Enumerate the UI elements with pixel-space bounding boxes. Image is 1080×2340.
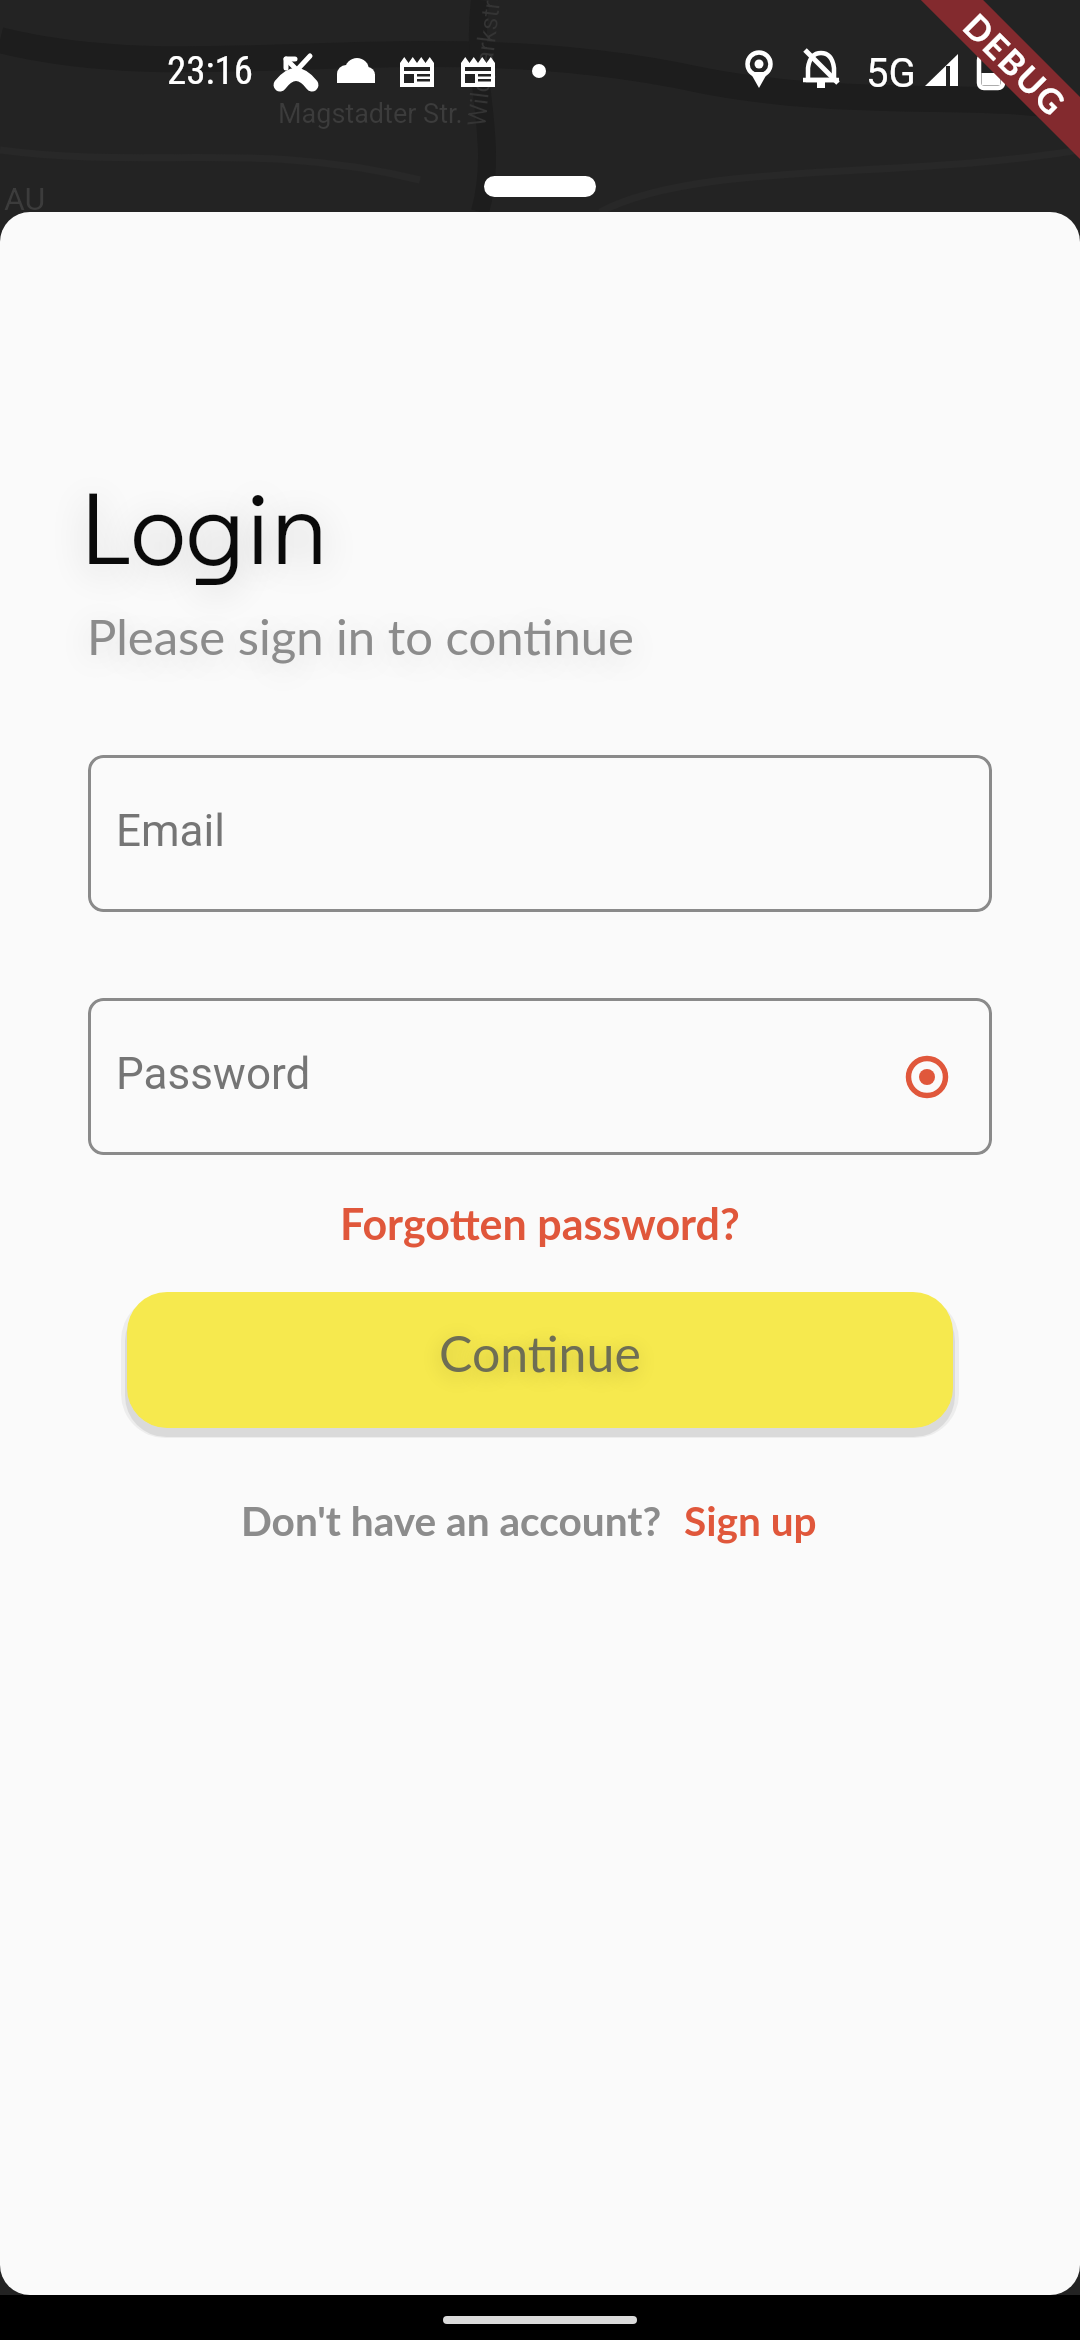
staticText: Wildparkstraße [462,0,511,128]
staticText: Login [81,455,328,591]
staticText: AU [4,180,46,218]
staticText: 5G [866,50,916,97]
button[interactable]: Sign up [684,1496,817,1545]
staticText: Magstadter Str. [278,98,463,130]
staticText: Password [116,1048,311,1100]
button[interactable]: Continue [127,1292,953,1428]
staticText: DEBUG [956,5,1075,124]
button[interactable]: Password [88,998,992,1155]
staticText: Don't have an account? [241,1496,662,1545]
staticText: Please sign in to continue [87,607,634,666]
button[interactable]: Email [88,755,992,912]
button[interactable]: Forgotten password? [340,1198,740,1250]
staticText: 23:16 [167,48,254,94]
staticText: Email [116,805,225,857]
button[interactable] [905,1055,949,1099]
staticText: Continue [439,1323,641,1383]
